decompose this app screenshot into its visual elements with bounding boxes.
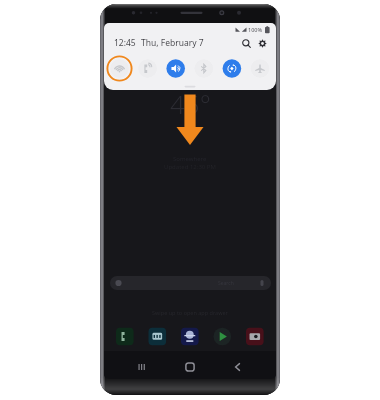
button[interactable]: Search xyxy=(240,37,253,50)
staticText: Thu, February 7 xyxy=(141,37,204,49)
button[interactable]: Sound xyxy=(168,59,187,78)
staticText: Search xyxy=(218,280,234,287)
button[interactable]: Bluetooth xyxy=(197,59,216,78)
button[interactable]: AT&T xyxy=(176,328,194,346)
button[interactable]: Airplane mode xyxy=(255,59,274,78)
button[interactable]: Home xyxy=(162,351,219,379)
staticText: Somewhere xyxy=(173,155,207,163)
button[interactable]: Phone xyxy=(110,328,128,346)
button[interactable]: Search xyxy=(110,276,271,290)
button[interactable]: Mobile data xyxy=(139,59,158,78)
button[interactable]: Messages xyxy=(143,328,161,346)
staticText: 45° xyxy=(170,86,211,121)
button[interactable]: Camera xyxy=(242,328,260,346)
button[interactable]: Settings xyxy=(256,37,269,50)
button[interactable]: Play Store xyxy=(209,328,227,346)
button[interactable]: Auto rotate xyxy=(226,59,245,78)
button[interactable]: Wi-Fi xyxy=(110,59,129,78)
staticText: 12:45 xyxy=(114,37,136,49)
button[interactable]: Back xyxy=(219,351,276,379)
staticText: Swipe up to open app drawer xyxy=(152,309,228,316)
staticText: 100% xyxy=(248,26,263,33)
button[interactable]: Recents xyxy=(104,351,162,379)
